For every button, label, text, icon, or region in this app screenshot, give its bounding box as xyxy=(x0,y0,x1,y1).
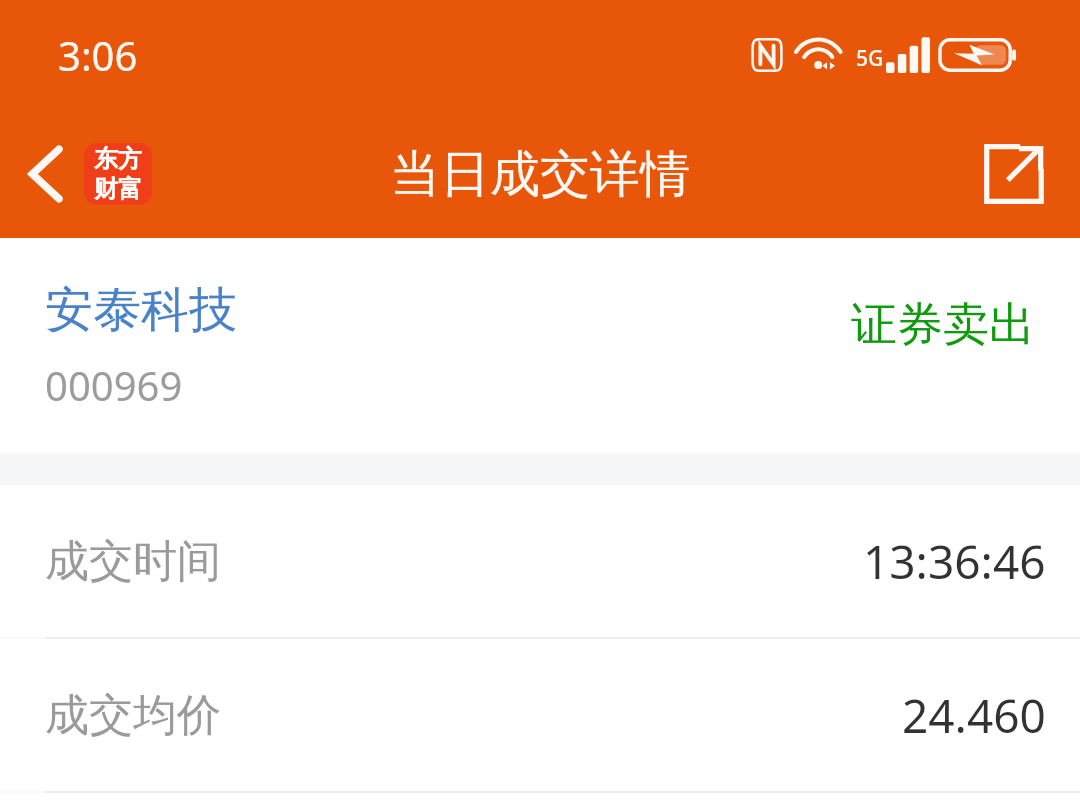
button[interactable]: East Money xyxy=(84,143,152,205)
staticText: 5G xyxy=(856,44,884,73)
staticText: 证券卖出 xyxy=(851,296,1035,354)
button[interactable]: 安泰科技 xyxy=(0,238,1080,453)
button[interactable]: Share xyxy=(972,132,1056,216)
staticText: 000969 xyxy=(45,358,183,412)
button[interactable]: 成交时间 xyxy=(0,485,1080,637)
staticText: 13:36:46 xyxy=(863,530,1046,593)
staticText: 成交时间 xyxy=(45,534,221,589)
button[interactable]: 成交均价 xyxy=(0,639,1080,791)
staticText: 安泰科技 xyxy=(45,280,237,340)
staticText: 财富 xyxy=(94,174,142,204)
staticText: 3:06 xyxy=(58,28,138,82)
staticText: 24.460 xyxy=(902,684,1046,747)
staticText: 当日成交详情 xyxy=(390,143,690,206)
button[interactable]: Back xyxy=(10,138,82,210)
staticText: 成交均价 xyxy=(45,688,221,743)
staticText: 东方 xyxy=(94,144,142,174)
